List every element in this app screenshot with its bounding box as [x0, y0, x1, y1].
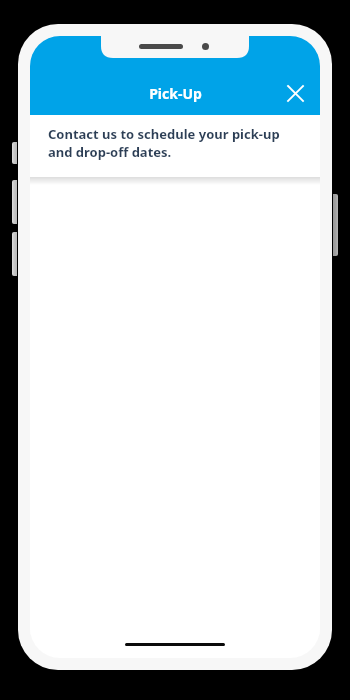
button[interactable]: Close: [276, 74, 314, 112]
staticText: Pick-Up: [149, 84, 202, 103]
staticText: Contact us to schedule your pick-up and …: [48, 125, 280, 161]
